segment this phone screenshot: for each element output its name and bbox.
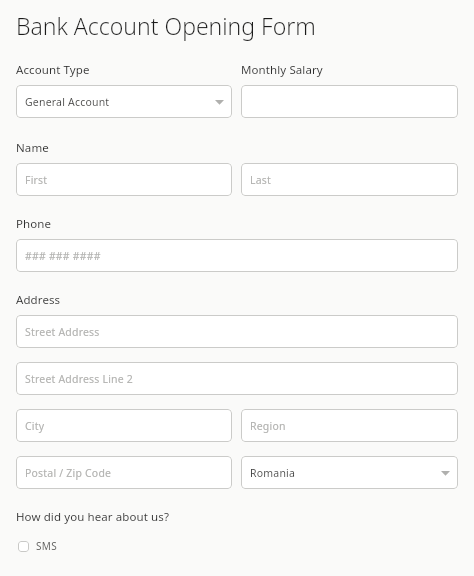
staticText: Address [16, 292, 61, 308]
button[interactable]: General Account [16, 85, 232, 118]
staticText: General Account [25, 95, 215, 109]
button[interactable]: Street Address Line 2 [16, 362, 458, 395]
staticText: Last [250, 173, 450, 187]
staticText: ### ### #### [25, 249, 450, 263]
button[interactable]: Street Address [16, 315, 458, 348]
staticText: Account Type [16, 62, 90, 78]
staticText: Postal / Zip Code [25, 466, 224, 480]
button[interactable] [241, 85, 458, 118]
button[interactable]: SMS checkbox [16, 537, 59, 555]
staticText: How did you hear about us? [16, 509, 170, 525]
button[interactable]: First [16, 163, 232, 196]
staticText: Phone [16, 216, 52, 232]
button[interactable]: Last [241, 163, 458, 196]
button[interactable]: City [16, 409, 232, 442]
other: SMS checkbox [18, 541, 29, 552]
staticText: Romania [250, 466, 441, 480]
staticText: Street Address [25, 325, 450, 339]
staticText: Street Address Line 2 [25, 372, 450, 386]
staticText: Monthly Salary [241, 62, 323, 78]
button[interactable]: Postal / Zip Code [16, 456, 232, 489]
button[interactable]: ### ### #### [16, 239, 458, 272]
staticText: City [25, 419, 224, 433]
staticText: Bank Account Opening Form [16, 10, 316, 41]
button[interactable]: Region [241, 409, 458, 442]
staticText: First [25, 173, 224, 187]
staticText: Name [16, 140, 49, 156]
button[interactable]: Romania [241, 456, 458, 489]
staticText: Region [250, 419, 450, 433]
staticText: SMS [36, 539, 57, 553]
